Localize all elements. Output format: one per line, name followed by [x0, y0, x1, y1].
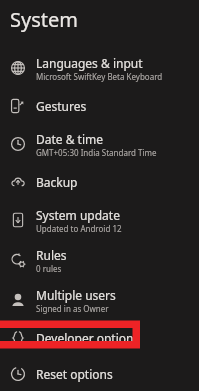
staticText: Gestures — [36, 98, 87, 114]
staticText: System — [10, 6, 78, 33]
staticText: Date & time — [36, 131, 104, 147]
button[interactable]: System update — [0, 200, 199, 240]
button[interactable]: Languages & input — [0, 48, 199, 88]
button[interactable]: Backup — [0, 164, 199, 200]
staticText: Languages & input — [36, 55, 143, 71]
staticText: System update — [36, 207, 120, 223]
staticText: Reset options — [36, 366, 113, 382]
button[interactable]: Rules — [0, 240, 199, 280]
button[interactable]: Multiple users — [0, 280, 199, 320]
staticText: Signed in as Owner — [36, 303, 109, 314]
button[interactable]: Developer options — [0, 320, 199, 356]
staticText: Developer options — [36, 330, 140, 346]
button[interactable]: Date & time — [0, 124, 199, 164]
staticText: Microsoft SwiftKey Beta Keyboard — [36, 71, 163, 82]
staticText: Multiple users — [36, 287, 116, 303]
staticText: Updated to Android 12 — [36, 223, 122, 234]
staticText: 0 rules — [36, 263, 62, 274]
button[interactable]: Reset options — [0, 356, 199, 391]
button[interactable]: Gestures — [0, 88, 199, 124]
staticText: Backup — [36, 174, 78, 190]
staticText: GMT+05:30 India Standard Time — [36, 147, 157, 158]
staticText: Rules — [36, 247, 67, 263]
